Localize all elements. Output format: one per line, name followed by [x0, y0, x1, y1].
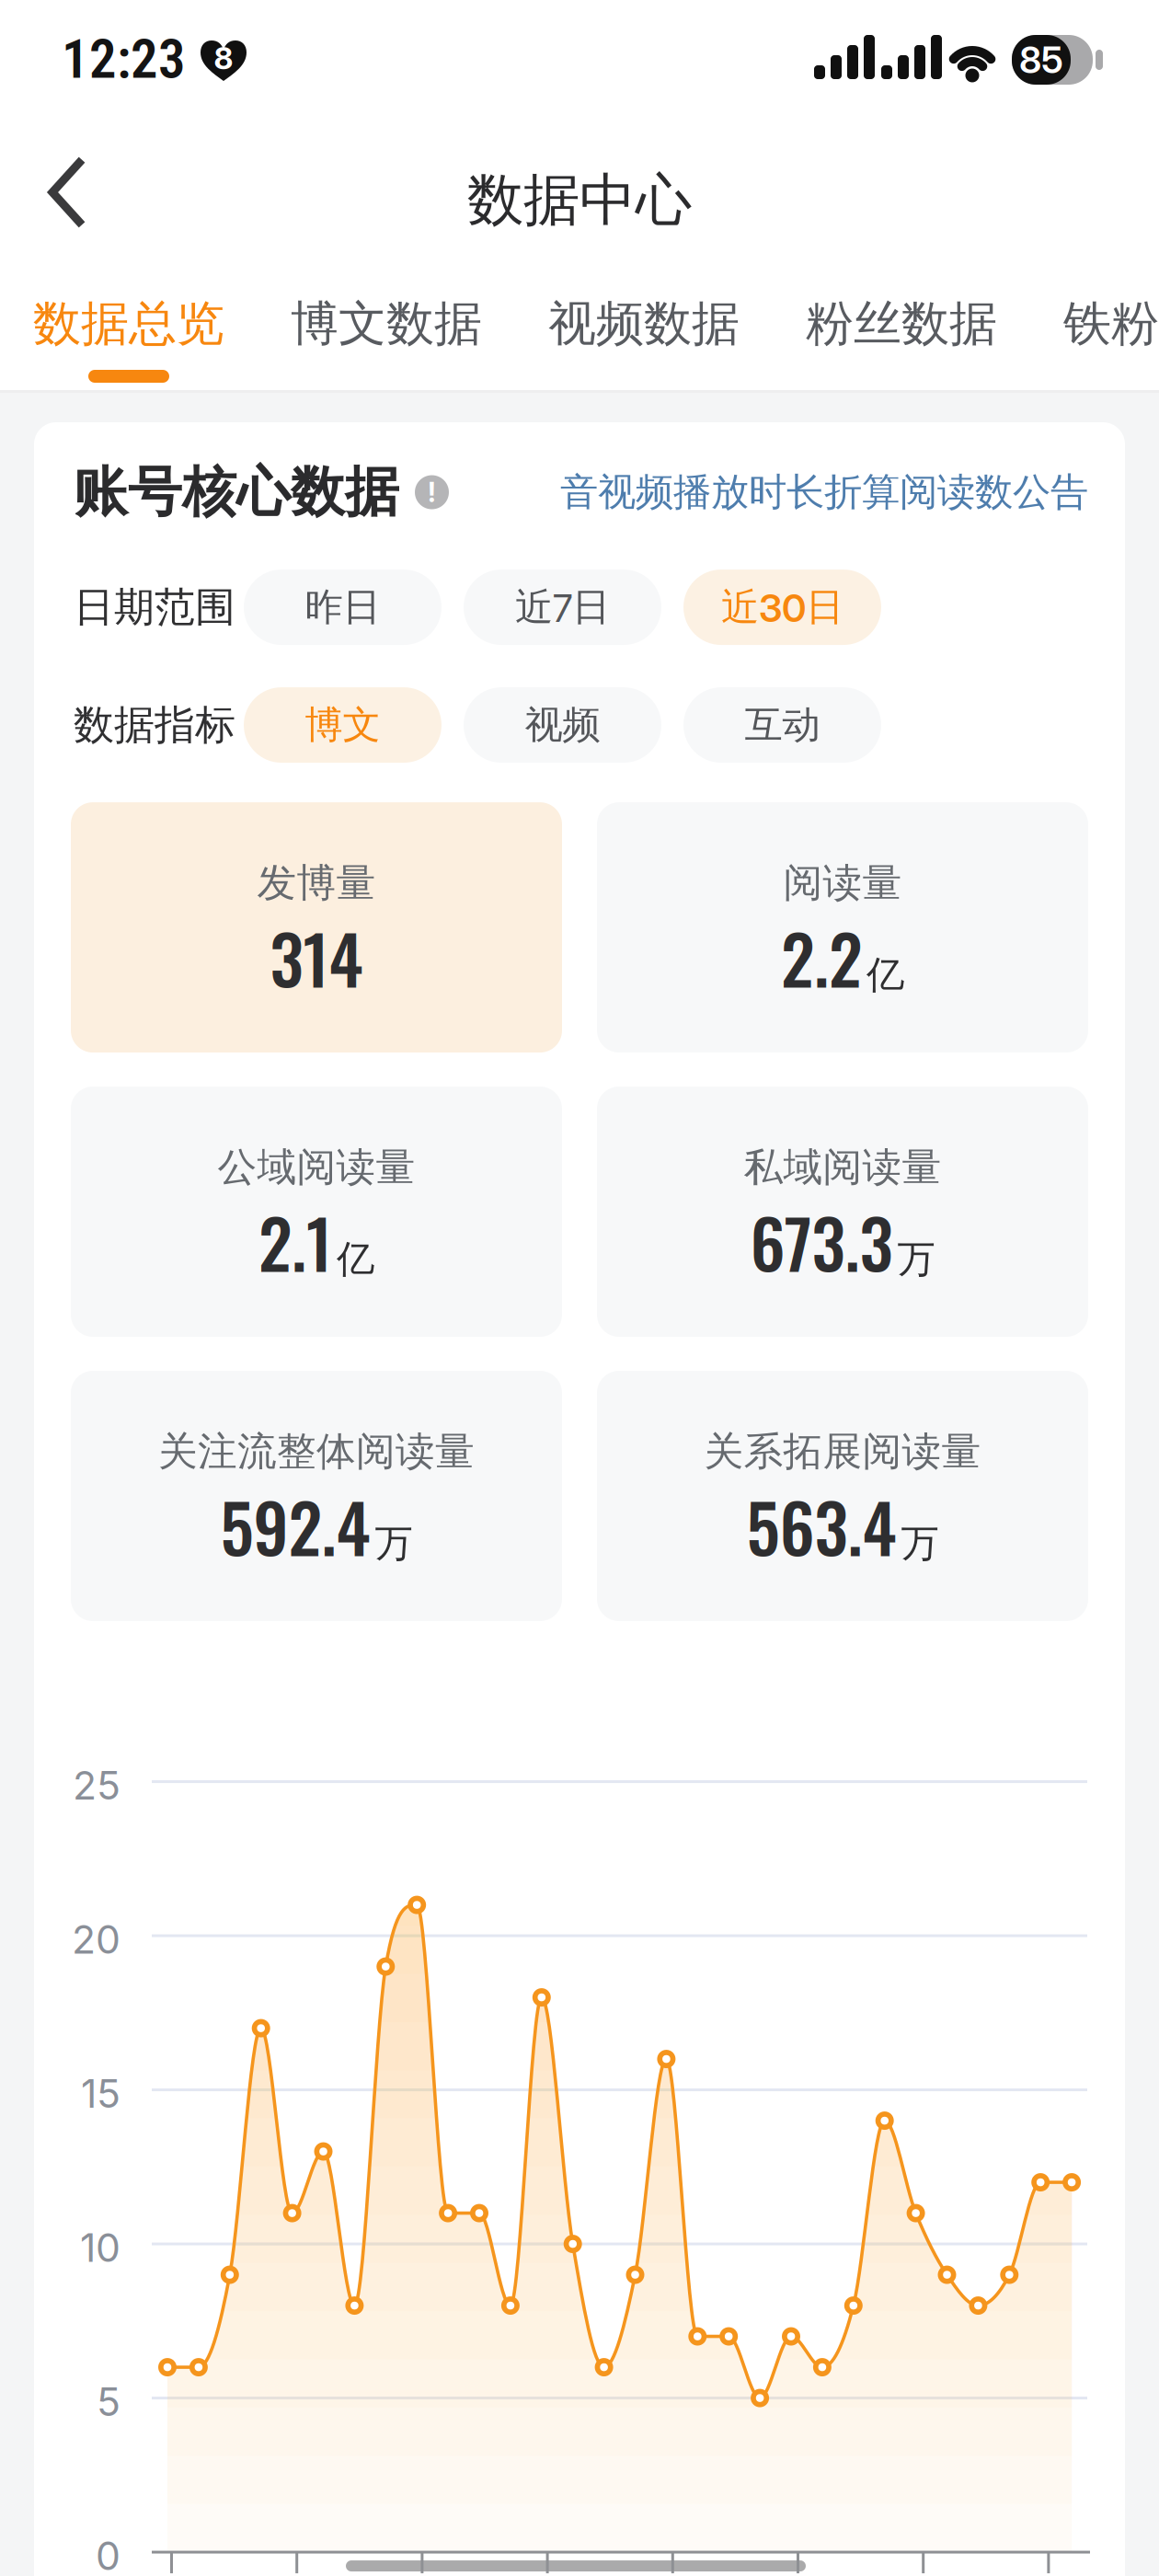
- staticText: 近7日: [515, 584, 610, 631]
- staticText: 近30日: [721, 584, 843, 631]
- staticText: 673.3: [750, 1191, 893, 1291]
- button[interactable]: Info: [415, 475, 449, 509]
- button[interactable]: 公域阅读量: [71, 1087, 562, 1337]
- staticText: 阅读量: [783, 859, 902, 907]
- staticText: 关注流整体阅读量: [158, 1427, 475, 1476]
- staticText: 563.4: [746, 1476, 896, 1576]
- staticText: 视频: [525, 702, 600, 748]
- button[interactable]: 发博量: [71, 802, 562, 1053]
- staticText: 博文: [305, 702, 380, 748]
- button[interactable]: 铁粉: [1063, 294, 1159, 353]
- button[interactable]: 关注流整体阅读量: [71, 1371, 562, 1621]
- button[interactable]: 数据总览: [33, 294, 224, 353]
- staticText: 8: [214, 40, 233, 76]
- button[interactable]: 视频数据: [548, 294, 740, 353]
- staticText: 私域阅读量: [744, 1143, 941, 1191]
- button[interactable]: 互动: [683, 687, 881, 763]
- staticText: !: [428, 476, 436, 508]
- staticText: 5: [97, 2379, 120, 2425]
- button[interactable]: Back: [0, 0, 86, 226]
- staticText: 2.1: [258, 1191, 332, 1291]
- staticText: 亿: [866, 952, 904, 998]
- staticText: 公域阅读量: [218, 1143, 415, 1191]
- button[interactable]: 音视频播放时长折算阅读数公告: [560, 469, 1088, 516]
- button[interactable]: 近30日: [683, 570, 881, 645]
- button[interactable]: 关系拓展阅读量: [597, 1371, 1088, 1621]
- button[interactable]: 博文数据: [291, 294, 482, 353]
- staticText: 音视频播放时长折算阅读数公告: [560, 469, 1088, 516]
- button[interactable]: 私域阅读量: [597, 1087, 1088, 1337]
- button[interactable]: 近7日: [464, 570, 661, 645]
- staticText: 账号核心数据: [74, 459, 399, 525]
- button[interactable]: 阅读量: [597, 802, 1088, 1053]
- button[interactable]: 博文: [244, 687, 442, 763]
- staticText: 万: [901, 1520, 939, 1567]
- staticText: 592.4: [220, 1476, 370, 1576]
- staticText: 铁粉: [1063, 294, 1159, 353]
- staticText: 25: [73, 1762, 120, 1808]
- button[interactable]: 视频: [464, 687, 661, 763]
- staticText: 日期范围: [74, 582, 235, 632]
- staticText: 数据总览: [33, 294, 224, 353]
- staticText: 亿: [337, 1236, 374, 1283]
- button[interactable]: 粉丝数据: [806, 294, 997, 353]
- staticText: 关系拓展阅读量: [704, 1427, 981, 1476]
- staticText: 10: [80, 2224, 120, 2271]
- staticText: 15: [81, 2070, 120, 2117]
- staticText: 万: [375, 1520, 413, 1567]
- staticText: 互动: [745, 702, 820, 748]
- staticText: 万: [897, 1236, 935, 1283]
- staticText: 85: [1019, 38, 1063, 82]
- staticText: 博文数据: [291, 294, 482, 353]
- staticText: 昨日: [305, 584, 380, 631]
- staticText: 2.2: [781, 907, 862, 1007]
- staticText: 314: [270, 907, 363, 1007]
- staticText: 粉丝数据: [806, 294, 997, 353]
- staticText: 数据中心: [467, 166, 692, 235]
- staticText: 发博量: [257, 859, 376, 907]
- staticText: 数据指标: [74, 700, 235, 750]
- staticText: 20: [72, 1916, 120, 1963]
- staticText: 12:23: [62, 28, 186, 91]
- button[interactable]: 昨日: [244, 570, 442, 645]
- staticText: 视频数据: [548, 294, 740, 353]
- staticText: 0: [96, 2533, 120, 2576]
